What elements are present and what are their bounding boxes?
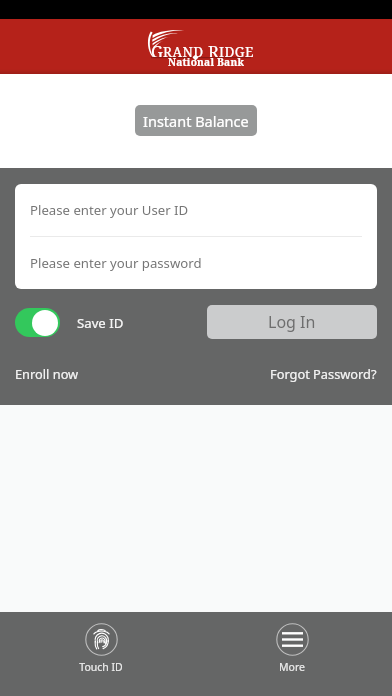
button[interactable]: Enroll now bbox=[15, 365, 79, 382]
button[interactable]: Save ID bbox=[15, 308, 124, 337]
other: Touch ID bbox=[85, 623, 118, 656]
button[interactable]: Please enter your password bbox=[15, 237, 377, 289]
staticText: R bbox=[208, 40, 219, 62]
staticText: Touch ID bbox=[79, 660, 123, 674]
staticText: National Bank bbox=[168, 55, 245, 69]
staticText: Instant Balance bbox=[143, 111, 249, 131]
staticText: Please enter your password bbox=[30, 254, 202, 272]
staticText: Please enter your User ID bbox=[30, 201, 189, 219]
staticText: RAND bbox=[163, 42, 204, 61]
staticText: IDGE bbox=[219, 42, 255, 61]
other: More bbox=[276, 623, 309, 656]
button[interactable]: Touch ID bbox=[73, 612, 129, 674]
staticText: Log In bbox=[268, 311, 316, 333]
button[interactable]: Please enter your User ID bbox=[15, 184, 377, 236]
button[interactable]: Instant Balance bbox=[135, 105, 257, 136]
button[interactable]: Log In bbox=[207, 305, 377, 339]
staticText: G bbox=[151, 40, 163, 62]
button[interactable]: Forgot Password? bbox=[270, 365, 377, 382]
button[interactable]: More bbox=[264, 612, 320, 674]
staticText: Save ID bbox=[77, 314, 124, 332]
staticText: More bbox=[279, 660, 305, 674]
